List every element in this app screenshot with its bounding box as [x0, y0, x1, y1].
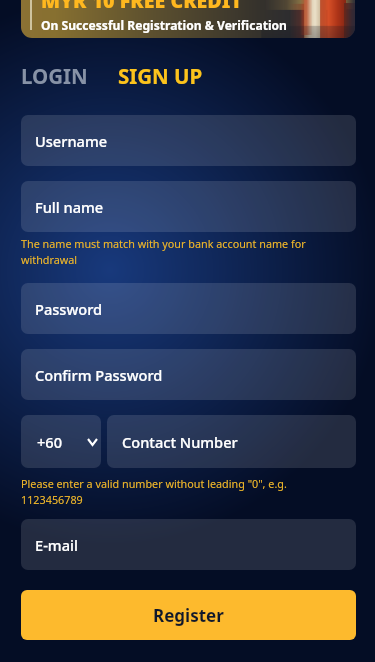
- button[interactable]: MYR 10 FREE CREDIT: [21, 0, 355, 38]
- staticText: Confirm Password: [35, 365, 163, 385]
- button[interactable]: E-mail: [21, 519, 356, 570]
- staticText: Register: [153, 604, 224, 627]
- staticText: +60: [37, 432, 63, 452]
- staticText: Full name: [35, 197, 104, 217]
- staticText: The name must match with your bank accou…: [21, 236, 340, 267]
- staticText: E-mail: [35, 535, 78, 555]
- button[interactable]: Country code +60: [21, 415, 101, 468]
- button[interactable]: Confirm Password: [21, 349, 356, 400]
- staticText: LOGIN: [21, 62, 88, 90]
- button[interactable]: SIGN UP: [118, 57, 203, 95]
- staticText: Password: [35, 299, 103, 319]
- button[interactable]: Contact Number: [107, 415, 356, 468]
- staticText: Username: [35, 131, 108, 151]
- staticText: Contact Number: [122, 432, 238, 452]
- button[interactable]: Register: [21, 590, 356, 640]
- staticText: MYR 10 FREE CREDIT: [41, 0, 243, 14]
- button[interactable]: Username: [21, 115, 356, 166]
- button[interactable]: Full name: [21, 181, 356, 232]
- staticText: SIGN UP: [118, 62, 203, 90]
- button[interactable]: LOGIN: [21, 57, 88, 95]
- staticText: Please enter a valid number without lead…: [21, 476, 340, 507]
- button[interactable]: Password: [21, 283, 356, 334]
- staticText: On Successful Registration & Verificatio…: [41, 17, 287, 33]
